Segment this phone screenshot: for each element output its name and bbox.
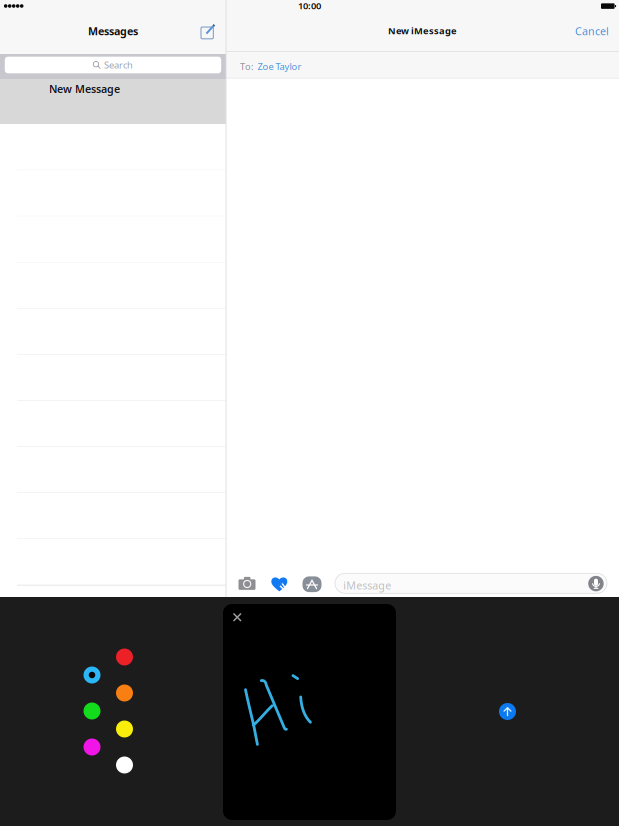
staticText: iMessage [343, 578, 391, 592]
staticText: Messages [88, 24, 138, 38]
button[interactable]: Colour [83, 666, 100, 683]
button[interactable]: Close [233, 613, 241, 621]
button[interactable]: Colour [116, 684, 133, 701]
staticText: New iMessage [388, 24, 457, 37]
button[interactable]: Camera [238, 577, 255, 590]
staticText: Zoe Taylor [257, 60, 301, 73]
staticText: To: [240, 60, 254, 73]
button[interactable]: Colour [83, 702, 100, 719]
button[interactable]: Dictate [588, 576, 604, 592]
staticText: Search [104, 59, 133, 71]
button[interactable]: Colour [116, 720, 133, 737]
staticText: Cancel [575, 24, 609, 38]
button[interactable]: Colour [116, 648, 133, 665]
button[interactable]: Cancel [572, 24, 619, 38]
button[interactable]: New Message [0, 79, 226, 124]
staticText: New Message [49, 82, 120, 96]
button[interactable]: Send [499, 703, 516, 720]
button[interactable]: Digital Touch [271, 576, 288, 592]
button[interactable]: Search [5, 57, 221, 73]
button[interactable]: Compose [202, 24, 216, 38]
button[interactable]: Apps [302, 576, 321, 592]
button[interactable]: Colour [116, 756, 133, 773]
button[interactable]: Colour [83, 738, 100, 755]
staticText: 10:00 [298, 0, 321, 12]
